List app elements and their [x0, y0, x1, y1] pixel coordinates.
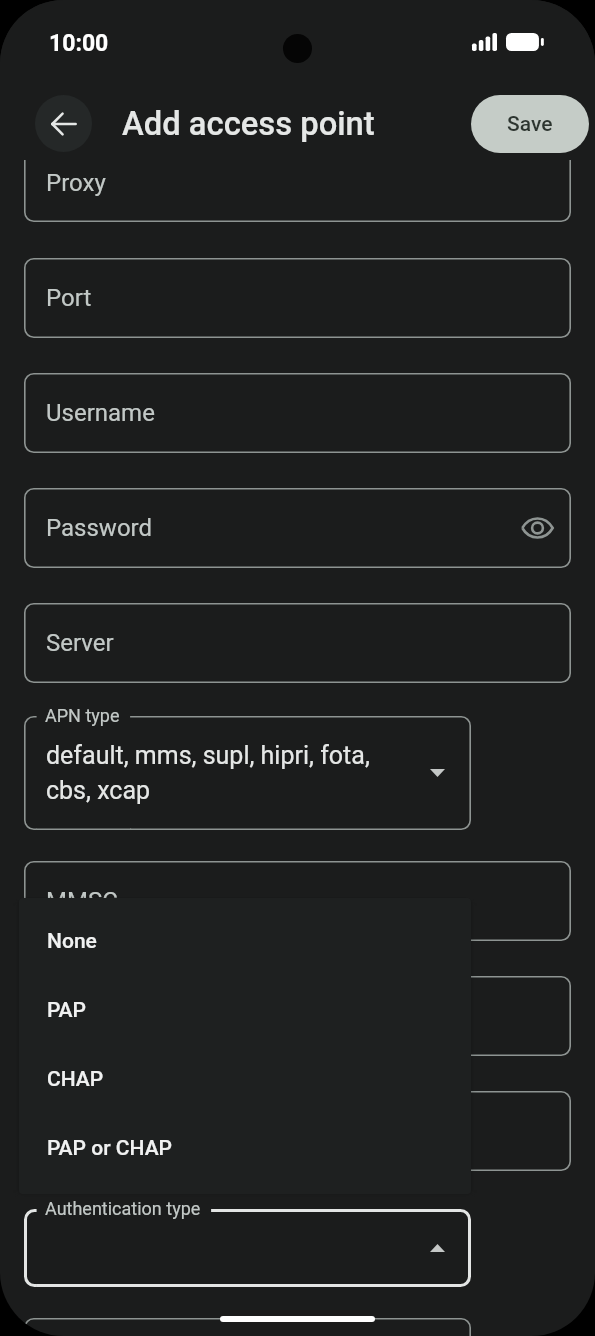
button[interactable]: Collapse authentication type	[422, 1233, 452, 1263]
staticText: Authentication type	[45, 1198, 201, 1219]
button[interactable]: Expand APN type	[422, 758, 452, 788]
staticText: Port	[46, 284, 92, 312]
staticText: Password	[46, 514, 153, 542]
button[interactable]: MMSC	[24, 861, 571, 941]
staticText: MMSC	[46, 887, 118, 915]
button[interactable]: Proxy	[24, 143, 571, 222]
staticText: Save	[507, 112, 553, 137]
staticText: cbs, xcap	[46, 776, 151, 805]
button[interactable]: PAP	[19, 976, 471, 1045]
staticText: MMS port	[46, 1117, 152, 1145]
button[interactable]: Password	[24, 488, 571, 568]
staticText: PAP	[47, 998, 87, 1023]
staticText: PAP or CHAP	[47, 1136, 173, 1161]
staticText: None	[47, 929, 97, 954]
button[interactable]	[24, 1318, 471, 1336]
button[interactable]: MMS proxy	[24, 976, 571, 1056]
staticText: Proxy	[46, 169, 106, 197]
staticText: Server	[46, 629, 114, 657]
button[interactable]: MMS port	[24, 1091, 571, 1171]
button[interactable]: CHAP	[19, 1045, 471, 1114]
staticText: 10:00	[49, 30, 109, 57]
button[interactable]: PAP or CHAP	[19, 1114, 471, 1183]
staticText: default, mms, supl, hipri, fota,	[46, 741, 370, 770]
staticText: MMS proxy	[46, 1002, 167, 1030]
button[interactable]: Save	[471, 95, 589, 153]
staticText: Add access point	[122, 105, 375, 143]
button[interactable]: Server	[24, 603, 571, 683]
button[interactable]: Username	[24, 373, 571, 453]
staticText: APN type	[45, 705, 120, 726]
button[interactable]: Port	[24, 258, 571, 338]
staticText: Username	[46, 399, 155, 427]
button[interactable]: Show password	[519, 510, 555, 546]
staticText: CHAP	[47, 1067, 104, 1092]
button[interactable]: None	[19, 907, 471, 976]
button[interactable]: Back	[35, 95, 92, 152]
